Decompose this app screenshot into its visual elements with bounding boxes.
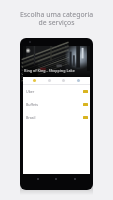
button[interactable]: Buffets: [23, 98, 90, 111]
button[interactable]: Category 3: [60, 77, 67, 84]
staticText: Uber: [26, 89, 35, 94]
staticText: King of King - Shopping Lake: [24, 68, 75, 73]
staticText: Buffets: [26, 102, 39, 107]
staticText: Brasil: [26, 115, 36, 120]
button[interactable]: Category 2: [46, 77, 53, 84]
staticText: Escolha uma categoria de serviços: [0, 10, 113, 27]
button[interactable]: Category 1: [31, 77, 38, 84]
button[interactable]: Category 4: [75, 77, 82, 84]
button[interactable]: Brasil: [23, 111, 90, 124]
button[interactable]: Uber: [23, 85, 90, 98]
